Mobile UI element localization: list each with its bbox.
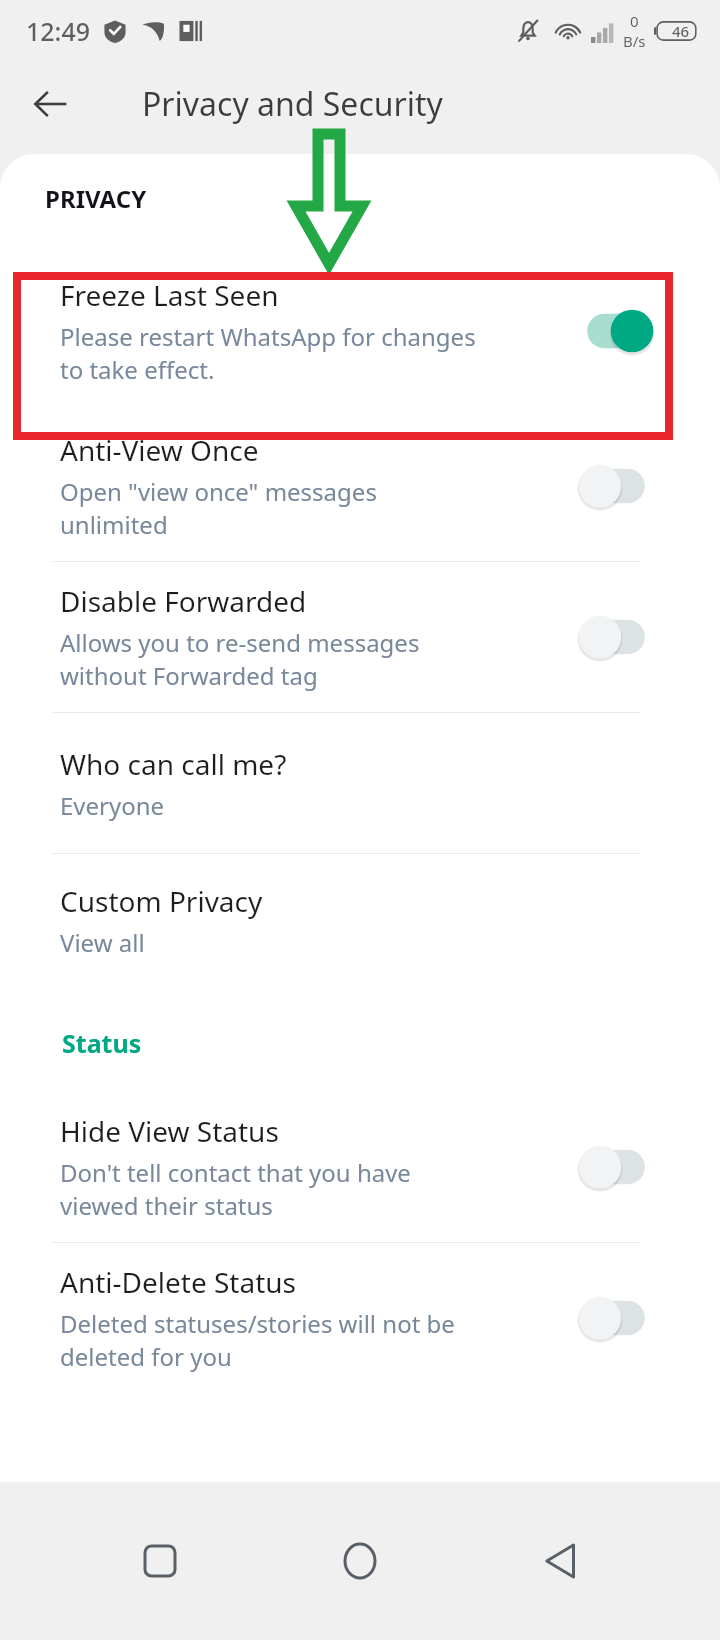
staticText: Deleted statuses/stories will not be del… xyxy=(60,1307,455,1373)
staticText: Freeze Last Seen xyxy=(60,276,279,314)
staticText: Open "view once" messages unlimited xyxy=(60,475,377,541)
staticText: Disable Forwarded xyxy=(60,582,307,620)
button[interactable]: Anti-Delete Status xyxy=(0,1243,720,1393)
button[interactable]: Freeze Last Seen xyxy=(574,301,658,361)
button[interactable]: Hide View Status xyxy=(0,1092,720,1242)
staticText: Privacy and Security xyxy=(142,82,443,126)
staticText: Anti-Delete Status xyxy=(60,1263,296,1301)
button[interactable]: Custom Privacy xyxy=(0,854,720,986)
staticText: 0 xyxy=(630,11,639,31)
button[interactable]: Anti-View Once xyxy=(574,456,658,516)
button[interactable]: Recent apps xyxy=(120,1521,200,1601)
staticText: Who can call me? xyxy=(60,745,287,783)
staticText: Anti-View Once xyxy=(60,431,259,469)
staticText: Allows you to re-send messages without F… xyxy=(60,626,420,692)
staticText: 12:49 xyxy=(26,14,91,48)
button[interactable]: Freeze Last Seen xyxy=(0,251,720,411)
staticText: 46 xyxy=(672,21,690,41)
button[interactable]: Back xyxy=(520,1521,600,1601)
button[interactable]: Disable Forwarded xyxy=(574,607,658,667)
staticText: Custom Privacy xyxy=(60,882,263,920)
staticText: Don't tell contact that you have viewed … xyxy=(60,1156,411,1222)
button[interactable]: Home xyxy=(320,1521,400,1601)
button[interactable]: Hide View Status xyxy=(574,1137,658,1197)
staticText: PRIVACY xyxy=(45,182,147,215)
staticText: Please restart WhatsApp for changes to t… xyxy=(60,320,476,386)
staticText: Everyone xyxy=(60,789,165,822)
button[interactable]: Disable Forwarded xyxy=(0,562,720,712)
button[interactable]: Who can call me? xyxy=(0,713,720,853)
button[interactable]: Back xyxy=(22,75,80,133)
staticText: View all xyxy=(60,926,145,959)
button[interactable]: Anti-Delete Status xyxy=(574,1288,658,1348)
button[interactable]: Anti-View Once xyxy=(0,411,720,561)
staticText: Status xyxy=(62,1026,142,1060)
staticText: B/s xyxy=(623,31,646,51)
staticText: Hide View Status xyxy=(60,1112,279,1150)
